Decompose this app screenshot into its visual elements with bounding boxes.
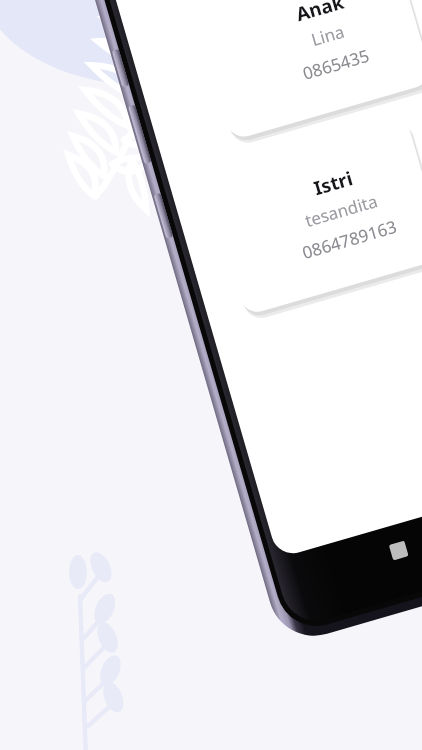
button[interactable]: Add contact [0,0,422,750]
